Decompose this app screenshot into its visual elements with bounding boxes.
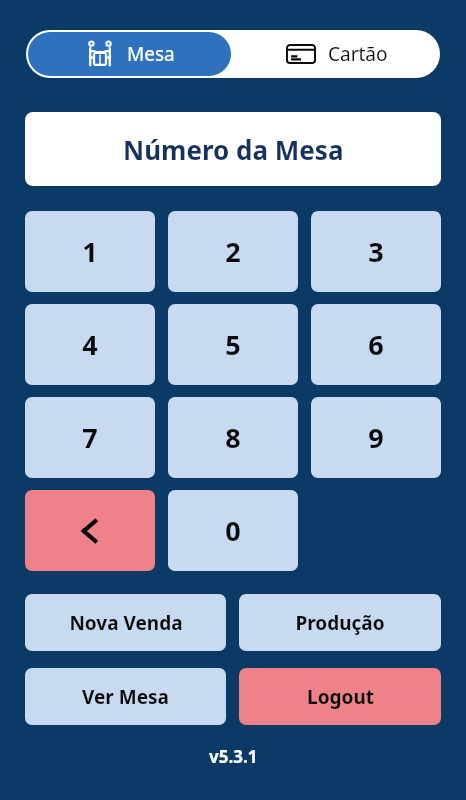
staticText: 4	[82, 326, 98, 363]
button[interactable]: 4	[25, 304, 155, 385]
staticText: Cartão	[328, 41, 388, 67]
staticText: Nova Venda	[69, 610, 183, 636]
staticText: 3	[368, 233, 384, 270]
button[interactable]: Cartão	[233, 30, 440, 78]
staticText: 0	[225, 512, 241, 549]
staticText: Número da Mesa	[123, 132, 344, 167]
button[interactable]: 8	[168, 397, 298, 478]
staticText: 6	[368, 326, 384, 363]
button[interactable]: 1	[25, 211, 155, 292]
button[interactable]: 7	[25, 397, 155, 478]
button[interactable]: Backspace	[25, 490, 155, 571]
staticText: 2	[225, 233, 241, 270]
button[interactable]: Produção	[239, 594, 441, 651]
staticText: 5	[225, 326, 241, 363]
staticText: Produção	[295, 610, 385, 636]
staticText: Ver Mesa	[82, 684, 169, 710]
button[interactable]: 3	[311, 211, 441, 292]
staticText: v5.3.1	[209, 745, 258, 768]
button[interactable]: Nova Venda	[25, 594, 226, 651]
staticText: Mesa	[127, 41, 175, 67]
staticText: 8	[225, 419, 241, 456]
button[interactable]: 6	[311, 304, 441, 385]
button[interactable]: Número da Mesa	[25, 112, 441, 186]
button[interactable]: Ver Mesa	[25, 668, 226, 725]
button[interactable]: 0	[168, 490, 298, 571]
button[interactable]: Mesa	[28, 32, 231, 76]
staticText: Logout	[307, 684, 374, 710]
button[interactable]: 5	[168, 304, 298, 385]
button[interactable]: 9	[311, 397, 441, 478]
button[interactable]: Logout	[239, 668, 441, 725]
button[interactable]: 2	[168, 211, 298, 292]
staticText: 9	[368, 419, 384, 456]
staticText: 7	[82, 419, 98, 456]
staticText: 1	[82, 233, 98, 270]
